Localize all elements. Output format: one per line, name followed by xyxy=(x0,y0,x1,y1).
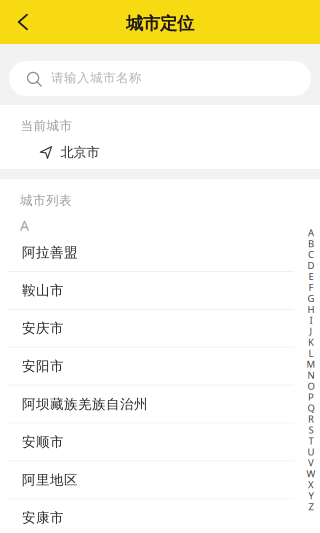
button[interactable]: 请输入城市名称 xyxy=(9,61,311,96)
staticText: V xyxy=(308,456,314,469)
staticText: K xyxy=(308,336,314,348)
staticText: 请输入城市名称 xyxy=(51,70,142,86)
staticText: R xyxy=(308,412,314,425)
staticText: 安庆市 xyxy=(22,320,64,337)
button[interactable]: Jump to U xyxy=(302,446,320,457)
button[interactable]: Jump to H xyxy=(302,304,320,315)
staticText: P xyxy=(308,390,314,403)
staticText: X xyxy=(308,478,314,491)
staticText: A xyxy=(308,226,314,239)
button[interactable]: Jump to M xyxy=(302,358,320,369)
button[interactable]: Jump to O xyxy=(302,380,320,391)
button[interactable]: Jump to Z xyxy=(302,501,320,512)
button[interactable]: Jump to G xyxy=(302,293,320,304)
button[interactable]: 安康市 xyxy=(0,499,320,533)
button[interactable]: Jump to Y xyxy=(302,490,320,501)
staticText: J xyxy=(309,325,312,338)
button[interactable]: Jump to I xyxy=(302,315,320,326)
button[interactable]: Jump to Q xyxy=(302,402,320,413)
staticText: U xyxy=(307,445,314,458)
button[interactable]: Jump to W xyxy=(302,468,320,479)
staticText: L xyxy=(308,347,313,359)
staticText: G xyxy=(307,292,314,305)
staticText: 安阳市 xyxy=(22,358,64,375)
button[interactable]: Jump to S xyxy=(302,424,320,435)
button[interactable]: Jump to V xyxy=(302,457,320,468)
button[interactable]: Jump to R xyxy=(302,413,320,424)
button[interactable]: Jump to P xyxy=(302,391,320,402)
staticText: H xyxy=(307,303,314,316)
button[interactable]: 北京市 xyxy=(0,137,320,167)
staticText: O xyxy=(307,379,314,392)
staticText: E xyxy=(308,270,313,283)
staticText: N xyxy=(307,368,314,381)
button[interactable]: Back xyxy=(0,0,50,44)
staticText: 鞍山市 xyxy=(22,282,64,299)
staticText: W xyxy=(306,467,315,480)
button[interactable]: Jump to D xyxy=(302,260,320,271)
button[interactable]: 阿坝藏族羌族自治州 xyxy=(0,386,320,424)
staticText: 安康市 xyxy=(22,509,64,526)
button[interactable]: 安顺市 xyxy=(0,424,320,461)
button[interactable]: Jump to C xyxy=(302,249,320,260)
staticText: Z xyxy=(308,500,313,513)
button[interactable]: Jump to K xyxy=(302,337,320,348)
staticText: 城市定位 xyxy=(126,13,194,34)
staticText: T xyxy=(308,434,313,447)
staticText: 当前城市 xyxy=(20,118,72,134)
button[interactable]: 阿拉善盟 xyxy=(0,234,320,272)
staticText: D xyxy=(307,259,314,272)
staticText: 北京市 xyxy=(60,144,99,160)
staticText: C xyxy=(308,248,314,261)
staticText: F xyxy=(308,281,313,294)
staticText: 阿里地区 xyxy=(22,471,78,488)
staticText: 城市列表 xyxy=(20,192,72,208)
button[interactable]: 鞍山市 xyxy=(0,272,320,310)
staticText: I xyxy=(309,314,312,327)
staticText: 阿坝藏族羌族自治州 xyxy=(22,396,148,413)
button[interactable]: 安庆市 xyxy=(0,310,320,348)
button[interactable]: Jump to L xyxy=(302,348,320,359)
button[interactable]: 阿里地区 xyxy=(0,461,320,499)
staticText: S xyxy=(308,423,313,436)
staticText: Q xyxy=(307,401,314,414)
button[interactable]: 安阳市 xyxy=(0,348,320,386)
button[interactable]: Jump to B xyxy=(302,238,320,249)
button[interactable]: Jump to F xyxy=(302,282,320,293)
staticText: 安顺市 xyxy=(22,433,64,450)
staticText: Y xyxy=(308,489,313,502)
button[interactable]: Jump to T xyxy=(302,435,320,446)
button[interactable]: Jump to X xyxy=(302,479,320,490)
button[interactable]: Jump to E xyxy=(302,271,320,282)
button[interactable]: Jump to A xyxy=(302,227,320,238)
staticText: M xyxy=(306,358,315,370)
button[interactable]: Jump to J xyxy=(302,326,320,337)
staticText: 阿拉善盟 xyxy=(22,244,78,261)
button[interactable]: Jump to N xyxy=(302,369,320,380)
staticText: A xyxy=(20,216,29,235)
staticText: B xyxy=(308,237,314,250)
